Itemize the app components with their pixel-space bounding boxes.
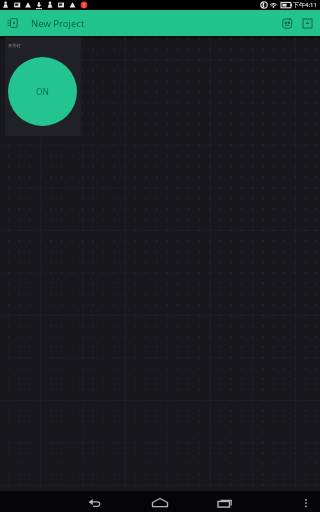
button[interactable]: Home <box>143 491 177 512</box>
staticText: 开关灯 <box>8 43 21 48</box>
staticText: New Project <box>31 17 85 30</box>
button[interactable]: Back <box>78 491 112 512</box>
button[interactable]: 开关灯 <box>5 37 81 136</box>
button[interactable]: Board <box>276 10 298 36</box>
button[interactable]: Widgets <box>298 10 316 36</box>
button[interactable]: More options <box>299 491 320 512</box>
button[interactable]: Recent apps <box>208 491 242 512</box>
staticText: ON <box>36 86 49 97</box>
button[interactable]: Open device <box>0 10 25 36</box>
button[interactable]: ON <box>8 57 77 126</box>
staticText: 下午4:11 <box>293 1 317 9</box>
